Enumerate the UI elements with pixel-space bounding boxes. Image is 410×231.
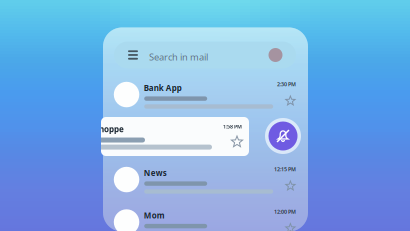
staticText: Mom [144, 210, 165, 221]
staticText: 2:30 PM [277, 81, 296, 88]
staticText: Search in mail [149, 51, 208, 63]
button[interactable]: Mom [103, 205, 308, 231]
button[interactable]: Shoppe [101, 117, 249, 156]
staticText: Bank App [144, 83, 182, 93]
staticText: 12:15 PM [274, 166, 296, 173]
button[interactable]: News [103, 163, 308, 205]
button[interactable]: Bank App [103, 78, 308, 120]
button[interactable]: Search in mail [114, 41, 296, 68]
staticText: 1:58 PM [223, 123, 242, 130]
staticText: 12:00 PM [274, 208, 296, 215]
staticText: News [144, 168, 167, 178]
staticText: Shoppe [95, 124, 124, 134]
button[interactable]: Mute conversation [265, 118, 301, 154]
